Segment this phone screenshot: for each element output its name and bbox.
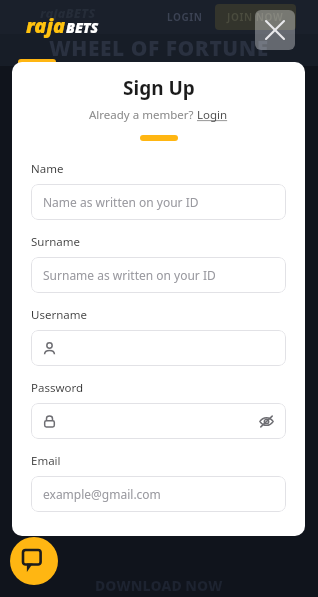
staticText: Surname as written on your ID (43, 267, 216, 283)
button[interactable]: Surname as written on your ID (31, 257, 286, 293)
button[interactable]: Close (255, 10, 295, 50)
button[interactable]: Login (197, 107, 228, 123)
staticText: DOWNLOAD NOW (95, 576, 223, 595)
button[interactable]: Name as written on your ID (31, 184, 286, 220)
staticText: Sign Up (123, 75, 195, 101)
staticText: rajaBETS (40, 4, 96, 22)
staticText: Login (197, 107, 228, 123)
staticText: example@gmail.com (43, 486, 161, 502)
staticText: raja (26, 12, 66, 39)
staticText: Username (31, 307, 87, 323)
staticText: Password (31, 380, 84, 396)
staticText: Name (31, 161, 64, 177)
staticText: Email (31, 453, 61, 469)
staticText: LOGIN (167, 10, 203, 24)
button[interactable]: Show password (31, 403, 286, 439)
button[interactable]: Chat support (10, 537, 58, 585)
button[interactable] (31, 330, 286, 366)
staticText: Name as written on your ID (43, 194, 199, 210)
staticText: WHEEL OF FORTUNE (49, 34, 269, 63)
button[interactable]: LOGIN (161, 6, 209, 28)
staticText: BETS (66, 18, 99, 37)
button[interactable]: Show password (259, 414, 274, 429)
staticText: JOIN NOW (227, 10, 284, 24)
button[interactable]: JOIN NOW (215, 4, 296, 30)
staticText: Surname (31, 234, 80, 250)
staticText: Already a member? (89, 107, 197, 123)
button[interactable]: example@gmail.com (31, 476, 286, 512)
